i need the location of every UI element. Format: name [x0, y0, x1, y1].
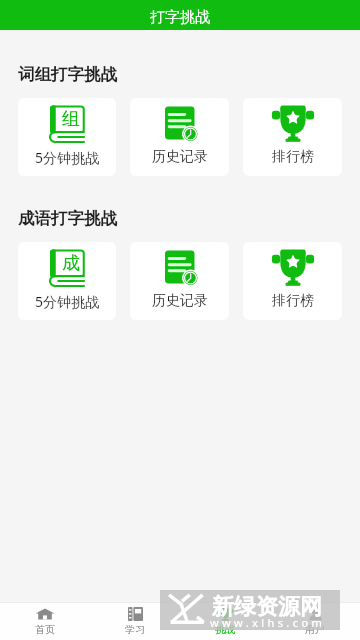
staticText: 用户	[305, 623, 325, 636]
staticText: 挑战	[215, 623, 235, 636]
staticText: 打字挑战	[150, 8, 210, 27]
staticText: 组	[62, 108, 80, 131]
staticText: 历史记录	[152, 292, 208, 310]
staticText: www.xlhs.com	[210, 615, 326, 630]
staticText: 5分钟挑战	[35, 148, 100, 167]
staticText: 成语打字挑战	[18, 208, 117, 229]
staticText: 历史记录	[152, 148, 208, 166]
staticText: 新绿资源网	[212, 593, 322, 621]
button[interactable]: 成	[18, 242, 116, 320]
button[interactable]: 历史记录	[130, 98, 229, 176]
button[interactable]: Study	[90, 603, 180, 640]
button[interactable]: 组	[18, 98, 116, 176]
staticText: 学习	[125, 623, 145, 636]
staticText: 排行榜	[272, 292, 314, 310]
button[interactable]: 历史记录	[130, 242, 229, 320]
button[interactable]: Home	[0, 603, 90, 640]
button[interactable]: User	[270, 603, 360, 640]
staticText: 成	[62, 252, 80, 275]
staticText: 5分钟挑战	[35, 292, 100, 311]
button[interactable]: Challenge	[180, 603, 270, 640]
staticText: 首页	[35, 623, 55, 636]
staticText: 词组打字挑战	[18, 64, 117, 85]
staticText: 排行榜	[272, 148, 314, 166]
button[interactable]: 排行榜	[243, 242, 342, 320]
button[interactable]: 排行榜	[243, 98, 342, 176]
